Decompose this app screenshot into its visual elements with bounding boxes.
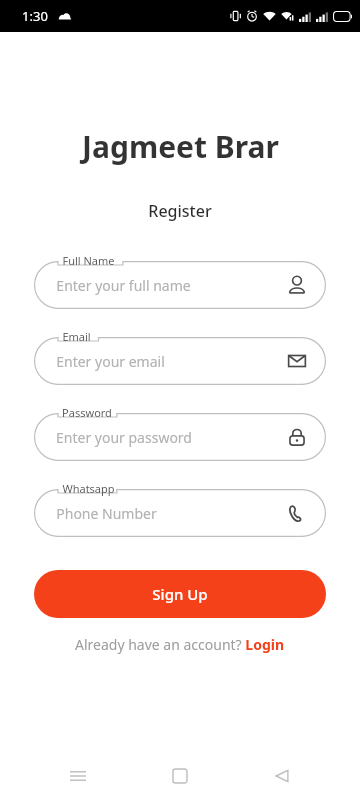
button[interactable]: Phone Number <box>34 481 326 537</box>
button[interactable]: Enter your password <box>34 405 326 461</box>
staticText: Full Name <box>62 253 115 268</box>
other: Password <box>286 426 308 448</box>
staticText: Enter your email <box>56 352 165 371</box>
button[interactable]: Enter your full name <box>34 253 326 309</box>
button[interactable]: Recents <box>54 752 102 800</box>
staticText: 1:30 <box>22 7 48 25</box>
staticText: Password <box>62 405 112 420</box>
other: Whatsapp <box>286 502 308 524</box>
staticText: Email <box>62 329 91 344</box>
staticText: Register <box>148 200 212 222</box>
staticText: Already have an account? Login <box>75 635 285 654</box>
staticText: Enter your password <box>56 428 192 447</box>
button[interactable]: Home <box>156 752 204 800</box>
button[interactable]: Back <box>258 752 306 800</box>
button[interactable]: Sign Up <box>34 570 326 618</box>
staticText: Sign Up <box>152 584 208 604</box>
staticText: Phone Number <box>56 504 157 523</box>
staticText: Whatsapp <box>62 481 115 496</box>
button[interactable]: Enter your email <box>34 329 326 385</box>
button[interactable]: Already have an account? Login <box>0 635 360 654</box>
other: Full Name <box>286 274 308 296</box>
other: Email <box>286 350 308 372</box>
staticText: Jagmeet Brar <box>82 126 279 167</box>
staticText: Enter your full name <box>56 276 191 295</box>
